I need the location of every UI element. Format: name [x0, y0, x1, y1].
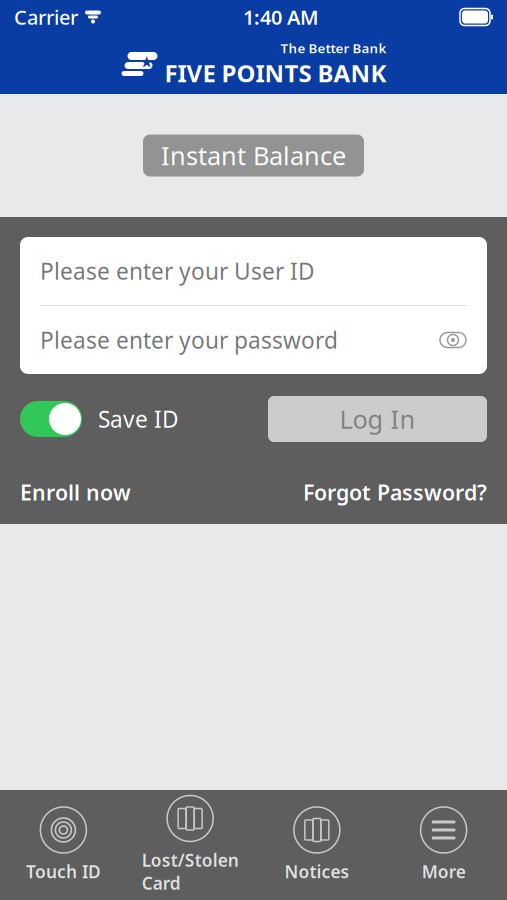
button[interactable]: Save ID	[20, 401, 179, 437]
button[interactable]: Instant Balance	[143, 134, 364, 176]
button[interactable]: More	[380, 799, 507, 891]
button[interactable]: Forgot Password?	[303, 478, 487, 506]
staticText: Enroll now	[20, 478, 131, 506]
staticText: Instant Balance	[161, 139, 346, 172]
staticText: Save ID	[98, 404, 179, 434]
staticText: Please enter your password	[40, 325, 338, 355]
button[interactable]: Please enter your password	[20, 306, 487, 374]
staticText: Log In	[339, 402, 415, 436]
button[interactable]: Enroll now	[20, 478, 131, 506]
button[interactable]: Please enter your User ID	[20, 237, 487, 305]
staticText: Forgot Password?	[303, 478, 487, 506]
staticText: Notices	[284, 860, 349, 883]
staticText: ★	[139, 53, 153, 71]
button[interactable]: Touch ID	[0, 799, 127, 891]
staticText: FIVE POINTS BANK	[164, 57, 386, 89]
staticText: 1:40 AM	[243, 4, 319, 30]
staticText: Touch ID	[26, 860, 101, 883]
staticText: Please enter your User ID	[40, 256, 315, 286]
button[interactable]: Notices	[253, 799, 380, 891]
staticText: More	[422, 860, 466, 883]
staticText: Lost/Stolen Card	[142, 848, 239, 894]
staticText: The Better Bank	[280, 39, 386, 57]
staticText: Carrier	[14, 4, 78, 30]
button[interactable]: Lost/Stolen Card	[127, 787, 254, 900]
button[interactable]: Log In	[268, 396, 487, 442]
